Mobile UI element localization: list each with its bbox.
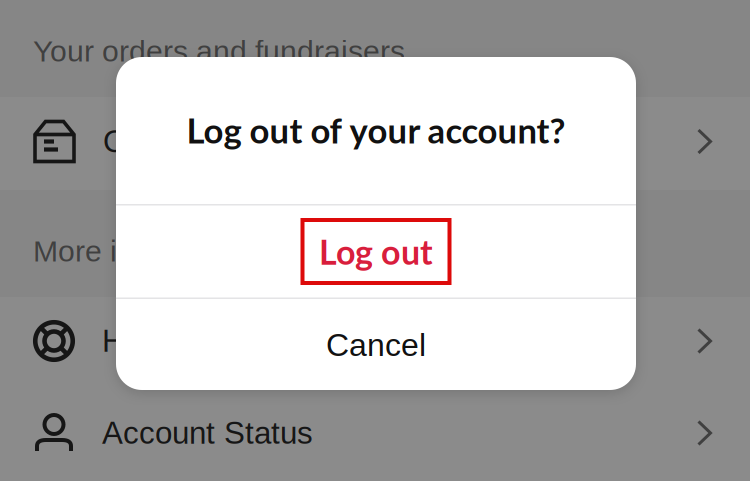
staticText: Log out of your account? [186,109,565,151]
button[interactable]: Cancel [116,299,636,391]
staticText: Your orders and fundraisers [33,34,405,68]
staticText: Account Status [102,415,313,450]
button[interactable]: Help & Contact [0,297,750,389]
staticText: Log out [319,231,433,272]
button[interactable]: Log out [116,205,636,297]
staticText: More information [33,234,260,268]
button[interactable]: Orders [0,97,750,190]
staticText: Orders [103,124,197,159]
staticText: Cancel [326,327,426,363]
button[interactable]: Account Status [0,389,750,481]
staticText: Help & Contact [102,323,313,358]
